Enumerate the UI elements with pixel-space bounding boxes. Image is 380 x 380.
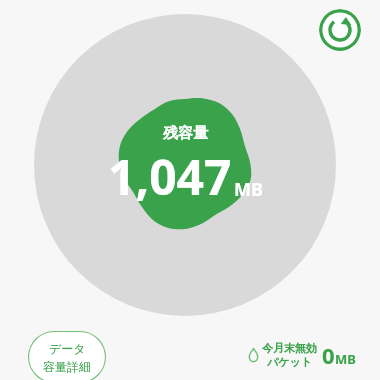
staticText: 残容量 bbox=[163, 124, 208, 143]
staticText: 容量詳細 bbox=[43, 359, 91, 374]
staticText: データ bbox=[49, 341, 86, 356]
staticText: パケット bbox=[267, 355, 313, 369]
staticText: 1,047 bbox=[108, 144, 232, 209]
button[interactable]: Refresh bbox=[319, 9, 361, 51]
staticText: MB bbox=[234, 177, 263, 202]
staticText: 0 bbox=[322, 340, 335, 370]
button[interactable]: データ bbox=[28, 331, 106, 380]
button[interactable]: 今月末無効 bbox=[248, 340, 356, 370]
staticText: MB bbox=[335, 350, 356, 368]
staticText: 今月末無効 bbox=[262, 341, 317, 355]
